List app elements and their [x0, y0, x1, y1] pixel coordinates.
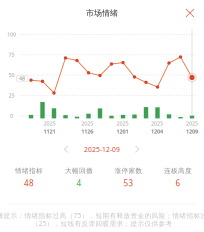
staticText: 2025 — [186, 120, 198, 127]
button[interactable]: 涨停家数 — [106, 165, 150, 190]
staticText: 1126 — [81, 128, 93, 135]
staticText: 25 — [8, 92, 14, 99]
staticText: 2025 — [116, 120, 128, 127]
staticText: 市场情绪 — [86, 8, 118, 18]
staticText: 1121 — [44, 128, 56, 135]
staticText: （25），短线有反弹回暖需求；提示仅供参考 — [31, 219, 172, 228]
staticText: 大幅回撤 — [65, 167, 93, 175]
staticText: 0 — [10, 112, 13, 119]
staticText: 连板高度 — [164, 167, 192, 175]
button[interactable]: Close — [181, 4, 199, 22]
staticText: 2025 — [81, 120, 93, 127]
staticText: 情绪指标 — [15, 167, 43, 175]
button[interactable]: 2025-12-09 — [80, 143, 124, 156]
staticText: 48 — [24, 178, 34, 188]
button[interactable]: Previous day — [60, 142, 72, 157]
button[interactable]: 大幅回撤 — [57, 165, 101, 190]
staticText: 53 — [123, 178, 133, 188]
staticText: 100 — [7, 31, 16, 38]
staticText: 48 — [19, 75, 25, 82]
button[interactable]: Next day — [131, 142, 143, 157]
staticText: 1204 — [151, 128, 163, 135]
staticText: 6 — [175, 178, 180, 188]
button[interactable]: 连板高度 — [156, 165, 200, 190]
staticText: 涨停家数 — [114, 167, 142, 175]
staticText: 4 — [76, 178, 81, 188]
staticText: 2025 — [44, 120, 56, 127]
staticText: 1209 — [186, 128, 198, 135]
staticText: 1201 — [116, 128, 128, 135]
staticText: 2025 — [151, 120, 163, 127]
staticText: 2025-12-09 — [84, 145, 120, 154]
staticText: 温馨提示：情绪指标过高（75），短期有释放资金的风险；情绪指标过低 — [0, 211, 204, 220]
staticText: 50 — [8, 71, 14, 79]
staticText: 75 — [8, 51, 14, 58]
button[interactable]: 情绪指标 — [7, 165, 51, 190]
